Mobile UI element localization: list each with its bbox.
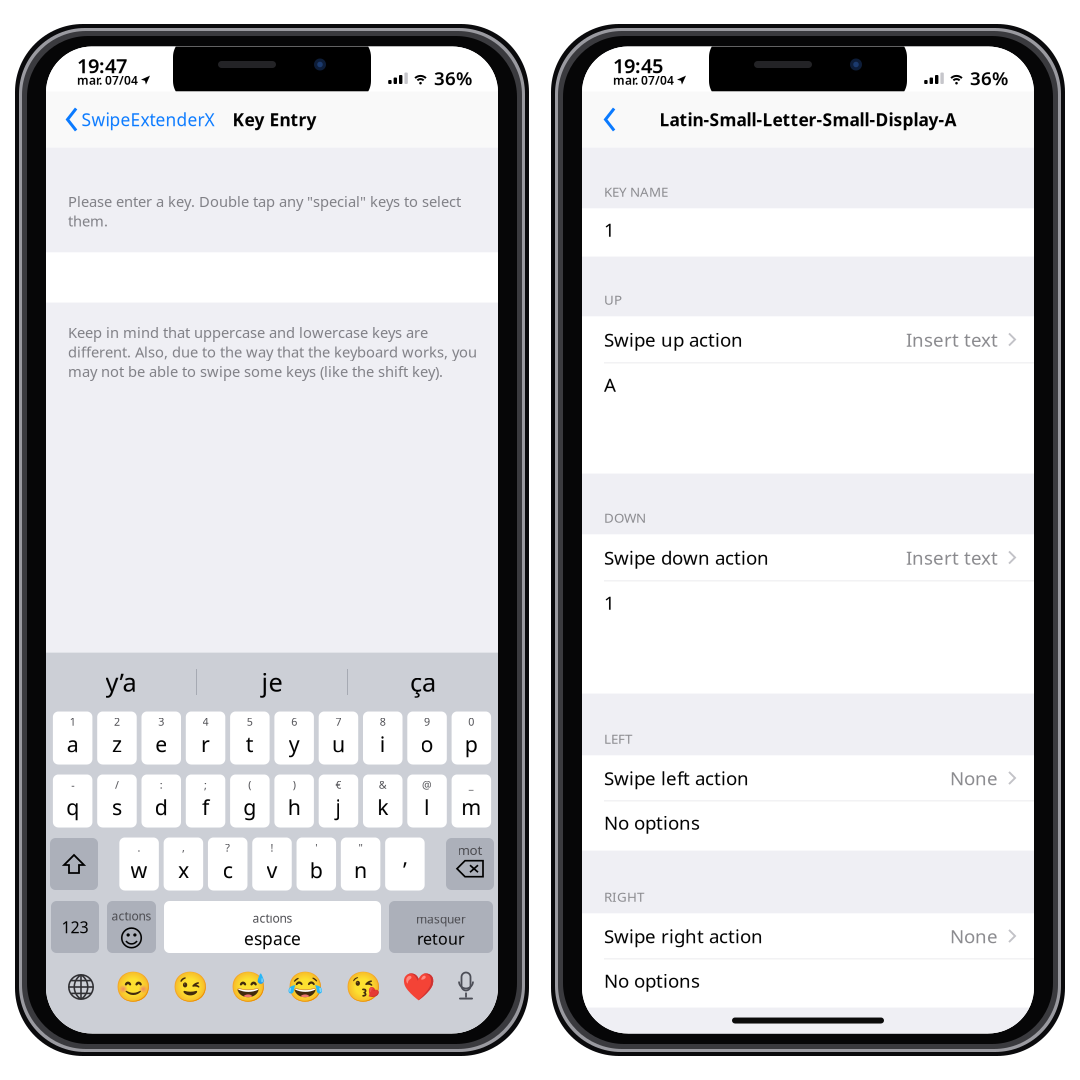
- button[interactable]: _: [452, 774, 491, 827]
- staticText: A: [604, 372, 616, 397]
- button[interactable]: Delete: [446, 838, 494, 890]
- staticText: 1: [604, 590, 615, 615]
- staticText: actions: [111, 908, 151, 924]
- staticText: 1: [604, 217, 615, 242]
- button[interactable]: -: [53, 774, 92, 827]
- button[interactable]: ': [296, 837, 336, 890]
- staticText: ❤️: [402, 972, 435, 1002]
- staticText: 7: [335, 714, 341, 729]
- button[interactable]: Latin-Small-Letter-Small-Display-A: [582, 91, 1034, 147]
- staticText: /: [115, 777, 119, 792]
- staticText: m: [461, 793, 481, 821]
- staticText: 123: [61, 916, 88, 938]
- button[interactable]: masquer: [389, 901, 493, 953]
- staticText: Swipe right action: [604, 924, 763, 948]
- staticText: 😂: [287, 970, 324, 1004]
- button[interactable]: ,: [164, 837, 203, 890]
- staticText: Latin-Small-Letter-Small-Display-A: [659, 108, 956, 131]
- button[interactable]: Swipe right action: [582, 913, 1034, 959]
- button[interactable]: .: [119, 837, 159, 890]
- staticText: ;: [204, 777, 207, 792]
- staticText: j: [335, 793, 341, 821]
- staticText: 😊: [115, 970, 152, 1004]
- staticText: y: [289, 730, 300, 758]
- button[interactable]: ?: [208, 837, 247, 890]
- staticText: Keep in mind that uppercase and lowercas…: [68, 322, 477, 381]
- button[interactable]: 9: [407, 711, 447, 764]
- staticText: u: [332, 730, 345, 758]
- staticText: ?: [225, 840, 230, 855]
- button[interactable]: Next keyboard: [68, 974, 94, 1000]
- button[interactable]: Shift: [50, 838, 98, 890]
- button[interactable]: &: [363, 774, 402, 827]
- staticText: 19:47: [77, 52, 127, 79]
- staticText: Swipe up action: [604, 327, 743, 352]
- button[interactable]: 5: [230, 711, 270, 764]
- button[interactable]: /: [97, 774, 137, 827]
- button[interactable]: ça: [348, 652, 498, 711]
- button[interactable]: 6: [274, 711, 314, 764]
- staticText: y’a: [105, 665, 136, 699]
- staticText: ': [315, 840, 317, 855]
- staticText: 9: [424, 714, 430, 729]
- staticText: k: [377, 793, 388, 821]
- button[interactable]: !: [252, 837, 292, 890]
- staticText: t: [246, 730, 254, 758]
- button[interactable]: €: [319, 774, 358, 827]
- button[interactable]: :: [141, 774, 181, 827]
- staticText: _: [469, 777, 474, 792]
- button[interactable]: 7: [319, 711, 358, 764]
- staticText: actions: [252, 910, 292, 926]
- button[interactable]: Swipe left action: [582, 755, 1034, 801]
- button[interactable]: 123: [51, 901, 99, 953]
- staticText: SwipeExtenderX: [82, 108, 215, 131]
- button[interactable]: @: [407, 774, 447, 827]
- staticText: ,: [182, 840, 185, 855]
- button[interactable]: Dictate: [456, 972, 476, 1001]
- button[interactable]: ": [341, 837, 380, 890]
- staticText: mot: [457, 841, 482, 859]
- button[interactable]: 8: [363, 711, 402, 764]
- staticText: mar. 07/04: [77, 72, 138, 88]
- staticText: 😅: [230, 970, 267, 1004]
- staticText: ": [359, 840, 363, 855]
- staticText: €: [335, 777, 341, 792]
- staticText: Insert text: [906, 545, 998, 570]
- staticText: &: [379, 777, 387, 792]
- staticText: c: [223, 856, 233, 884]
- button[interactable]: Key Entry: [221, 91, 317, 147]
- button[interactable]: y’a: [46, 652, 196, 711]
- staticText: ça: [410, 665, 436, 699]
- button[interactable]: 0: [452, 711, 491, 764]
- staticText: ☺: [119, 925, 144, 952]
- staticText: !: [270, 840, 273, 855]
- staticText: masquer: [416, 911, 466, 927]
- staticText: LEFT: [604, 730, 632, 747]
- button[interactable]: 1: [53, 711, 92, 764]
- staticText: 0: [468, 714, 474, 729]
- button[interactable]: [385, 837, 425, 890]
- staticText: e: [155, 730, 167, 758]
- staticText: (: [248, 777, 251, 792]
- button[interactable]: ;: [186, 774, 225, 827]
- staticText: r: [201, 730, 210, 758]
- staticText: z: [112, 730, 122, 758]
- button[interactable]: 2: [97, 711, 137, 764]
- staticText: 36%: [970, 66, 1008, 90]
- staticText: Swipe left action: [604, 766, 749, 790]
- button[interactable]: 4: [186, 711, 225, 764]
- button[interactable]: actions: [107, 901, 156, 953]
- button[interactable]: ): [274, 774, 314, 827]
- button[interactable]: Swipe down action: [582, 534, 1034, 581]
- staticText: -: [71, 777, 74, 792]
- button[interactable]: SwipeExtenderX: [46, 91, 221, 147]
- button[interactable]: actions: [164, 901, 381, 953]
- staticText: v: [266, 856, 277, 884]
- staticText: :: [160, 777, 163, 792]
- button[interactable]: Swipe up action: [582, 316, 1034, 363]
- staticText: 6: [291, 714, 297, 729]
- staticText: 8: [380, 714, 386, 729]
- button[interactable]: (: [230, 774, 270, 827]
- button[interactable]: 3: [141, 711, 181, 764]
- button[interactable]: je: [197, 652, 347, 711]
